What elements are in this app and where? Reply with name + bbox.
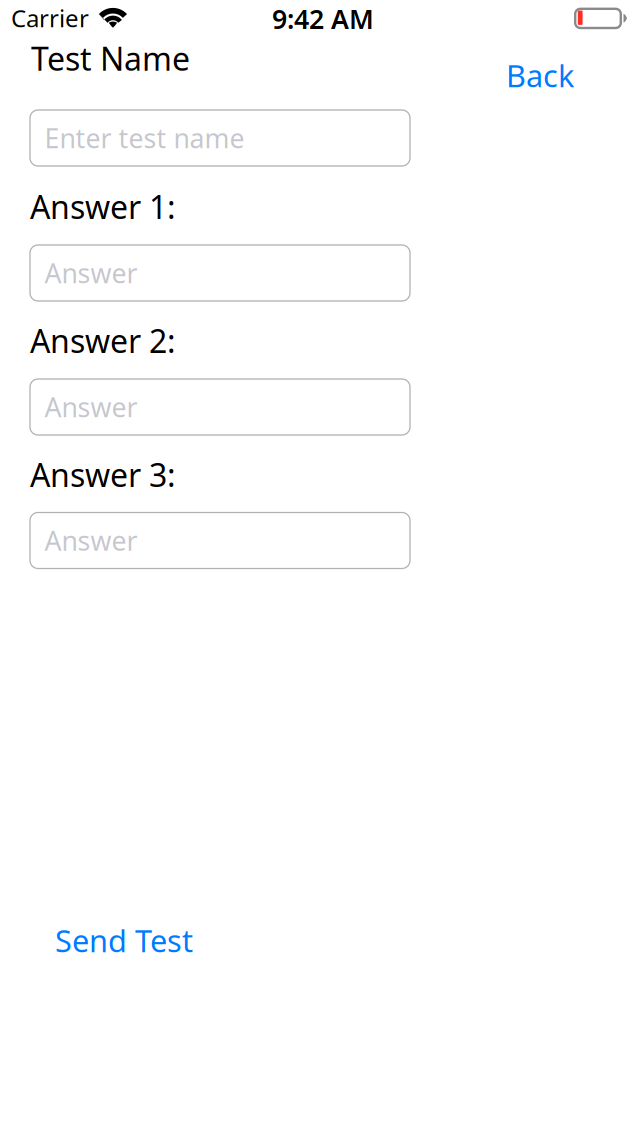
staticText: Answer 3: — [30, 453, 176, 496]
button[interactable]: Back — [498, 49, 582, 102]
staticText: Enter test name — [44, 120, 244, 156]
staticText: Answer 2: — [30, 319, 176, 362]
button[interactable]: Answer — [30, 512, 410, 568]
staticText: 9:42 AM — [272, 1, 374, 36]
staticText: Answer — [44, 389, 137, 425]
staticText: Answer — [44, 255, 137, 291]
button[interactable]: Answer — [30, 245, 410, 301]
staticText: Send Test — [55, 920, 193, 961]
staticText: Back — [506, 55, 574, 96]
staticText: Test Name — [31, 37, 190, 79]
staticText: Answer 1: — [30, 185, 176, 228]
button[interactable]: Send Test — [46, 914, 202, 967]
button[interactable]: Enter test name — [30, 110, 410, 166]
button[interactable]: Answer — [30, 379, 410, 435]
staticText: Answer — [44, 523, 137, 558]
staticText: Carrier — [11, 2, 89, 34]
